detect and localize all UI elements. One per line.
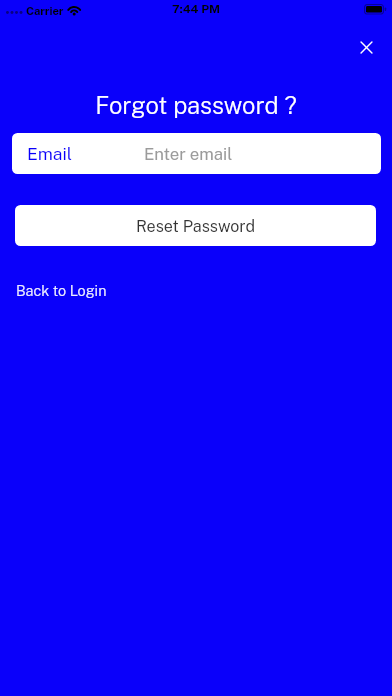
staticText: Enter email xyxy=(144,144,233,164)
staticText: Back to Login xyxy=(16,282,107,299)
button[interactable]: Reset Password xyxy=(15,205,376,246)
staticText: 7:44 PM xyxy=(0,2,392,16)
staticText: Forgot password ? xyxy=(0,91,392,119)
button[interactable]: Close xyxy=(350,31,382,63)
button[interactable]: Email xyxy=(12,133,381,174)
button[interactable]: Back to Login xyxy=(16,282,107,299)
staticText: Reset Password xyxy=(136,217,256,236)
staticText: Carrier xyxy=(26,4,64,17)
staticText: Email xyxy=(27,143,73,164)
